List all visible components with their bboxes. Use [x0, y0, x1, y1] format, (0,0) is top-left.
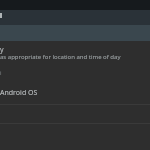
staticText: i — [0, 69, 2, 77]
staticText: y — [0, 45, 4, 55]
staticText: as appropriate for location and time of … — [0, 53, 121, 61]
button[interactable]: y — [0, 41, 150, 66]
button[interactable]: Android OS — [0, 86, 150, 104]
staticText: Android OS — [0, 88, 38, 98]
button[interactable] — [0, 10, 150, 25]
